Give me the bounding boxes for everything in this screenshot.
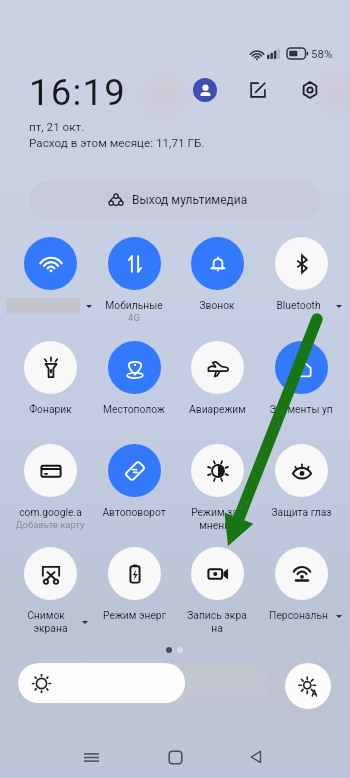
staticText: Добавьте карту [15, 519, 85, 530]
staticText: Автоповорот [102, 506, 166, 518]
staticText: Выход мультимедиа [132, 193, 248, 207]
button[interactable]: Wallet [8, 442, 92, 537]
other: Hotspot [275, 547, 328, 600]
other: Flashlight [24, 341, 77, 394]
button[interactable]: Dark mode [175, 442, 259, 537]
staticText: com.google.a [19, 506, 82, 518]
other: Screen recorder [191, 547, 244, 600]
button[interactable]: Edit tiles [245, 77, 271, 103]
other: Eye comfort [275, 444, 328, 497]
button[interactable]: Bluetooth [259, 235, 343, 330]
staticText: Фонарик [29, 403, 72, 415]
staticText: Bluetooth [276, 299, 321, 311]
button[interactable]: Settings [297, 77, 323, 103]
other: Wallet [24, 444, 77, 497]
other: Auto-rotate [108, 444, 161, 497]
button[interactable]: Auto-rotate [92, 442, 176, 537]
button[interactable]: User account [193, 78, 217, 102]
button[interactable]: Screen recorder [175, 545, 259, 640]
staticText: Режим энерг [103, 609, 166, 621]
staticText: Режим зат [191, 506, 243, 518]
staticText: пт, 21 окт. [29, 120, 85, 134]
staticText: 58% [311, 47, 333, 60]
other: Ringer [191, 237, 244, 290]
other: Power saving [108, 547, 161, 600]
staticText: Защита глаз [271, 506, 332, 518]
button[interactable]: Power saving [92, 545, 176, 640]
button[interactable]: Location [92, 339, 176, 434]
other: Wi-Fi [24, 237, 77, 290]
button[interactable]: Home [160, 742, 190, 772]
button[interactable]: Ringer [175, 235, 259, 330]
staticText: Авиарежим [189, 403, 246, 415]
button[interactable]: Device controls [259, 339, 343, 434]
staticText: Снимок [27, 609, 65, 621]
button[interactable]: Back [241, 742, 271, 772]
button[interactable]: Mobile data [92, 235, 176, 330]
button[interactable]: Wi-Fi [8, 235, 92, 330]
staticText: Мобильные [105, 299, 163, 311]
button[interactable]: Airplane mode [175, 339, 259, 434]
other: Airplane mode [191, 341, 244, 394]
staticText: экрана [33, 622, 68, 634]
other: Bluetooth [275, 237, 328, 290]
other: Mobile data [108, 237, 161, 290]
button[interactable]: Flashlight [8, 339, 92, 434]
staticText: Звонок [199, 299, 235, 311]
staticText: 4G [128, 312, 140, 323]
staticText: 16:19 [29, 71, 126, 114]
button[interactable]: Screenshot [8, 545, 92, 640]
button[interactable]: Eye comfort [259, 442, 343, 537]
button[interactable]: Hotspot [259, 545, 343, 640]
other: Screenshot [24, 547, 77, 600]
button[interactable]: Recent apps [76, 742, 106, 772]
staticText: Расход в этом месяце: 11,71 ГБ. [29, 136, 205, 150]
staticText: Местополож [103, 403, 165, 415]
button[interactable]: Auto brightness [285, 663, 331, 709]
staticText: на [211, 622, 223, 634]
other: Device controls [275, 341, 328, 394]
staticText: мнения [199, 519, 236, 531]
staticText: Элементы уп [269, 403, 333, 415]
other: Location [108, 341, 161, 394]
staticText: Персональн [269, 609, 328, 621]
staticText: Запись экра [187, 609, 247, 621]
button[interactable]: Выход мультимедиа [29, 181, 321, 219]
button[interactable]: Brightness [18, 663, 271, 703]
other: Dark mode [191, 444, 244, 497]
